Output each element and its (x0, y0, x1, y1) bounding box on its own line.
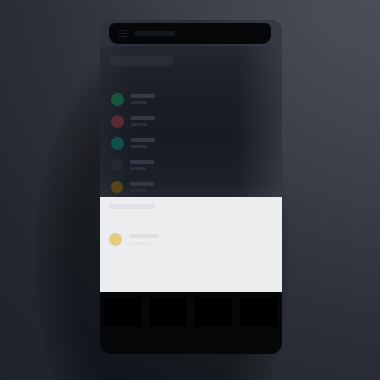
button[interactable] (109, 233, 282, 246)
button[interactable]: Search (145, 292, 190, 354)
button[interactable] (100, 132, 282, 154)
button[interactable]: Notifications (190, 292, 236, 354)
button[interactable] (100, 110, 282, 132)
button[interactable]: App bar (109, 23, 271, 44)
button[interactable] (100, 154, 282, 176)
button[interactable] (100, 176, 282, 197)
button[interactable]: Home (100, 292, 145, 354)
button[interactable]: Profile (236, 292, 282, 354)
button[interactable] (100, 88, 282, 110)
